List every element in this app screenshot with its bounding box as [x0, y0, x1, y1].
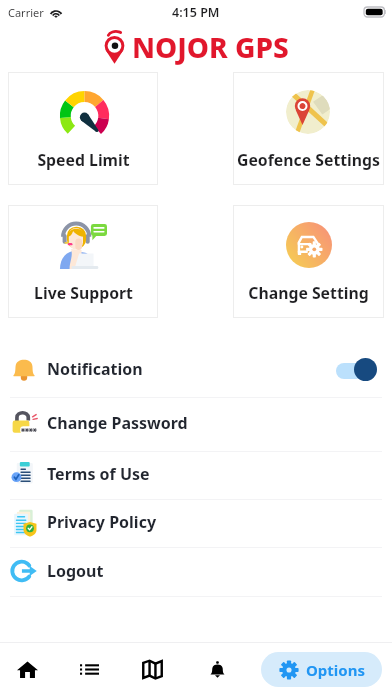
staticText: Privacy Policy	[47, 511, 157, 533]
staticText: Notification	[47, 358, 143, 380]
staticText: Speed Limit	[37, 149, 130, 171]
staticText: Change Password	[47, 412, 188, 434]
button[interactable]: Notifications	[196, 643, 238, 696]
button[interactable]: Home	[6, 643, 48, 696]
button[interactable]: List	[68, 643, 110, 696]
staticText: Options	[306, 660, 365, 680]
button[interactable]: Notification	[0, 342, 392, 396]
button[interactable]: Change Setting	[233, 205, 384, 318]
staticText: NOJOR GPS	[132, 28, 289, 66]
button[interactable]: Live Support	[8, 205, 158, 318]
button[interactable]: Logout	[0, 546, 392, 595]
button[interactable]: Change Password	[0, 396, 392, 450]
staticText: Geofence Settings	[237, 149, 380, 171]
staticText: Live Support	[34, 282, 133, 304]
staticText: Logout	[47, 560, 104, 582]
button[interactable]: Geofence Settings	[233, 72, 384, 185]
staticText: Carrier	[8, 5, 44, 20]
button[interactable]: Options	[261, 652, 382, 687]
staticText: Terms of Use	[47, 463, 150, 485]
button[interactable]: Map	[131, 643, 173, 696]
staticText: Change Setting	[248, 282, 369, 304]
button[interactable]: Privacy Policy	[0, 498, 392, 546]
staticText: 4:15 PM	[172, 4, 220, 21]
button[interactable]: Terms of Use	[0, 450, 392, 498]
button[interactable]: Speed Limit	[8, 72, 158, 185]
